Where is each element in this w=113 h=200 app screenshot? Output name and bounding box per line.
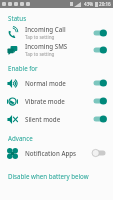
staticText: Incoming SMS (25, 42, 68, 50)
staticText: 20:16 (99, 1, 111, 7)
staticText: Normal mode (25, 79, 66, 87)
button[interactable]: Toggle on (92, 114, 107, 124)
button[interactable]: Incoming Call (0, 24, 113, 41)
button[interactable]: Incoming SMS (0, 41, 113, 58)
button[interactable]: Toggle on (92, 78, 107, 88)
staticText: Advance (8, 134, 33, 142)
staticText: Enable for (8, 64, 38, 72)
staticText: Incoming Call (25, 25, 66, 33)
button[interactable]: Disable when battery below (0, 169, 113, 183)
staticText: Vibrate mode (25, 97, 65, 105)
staticText: Status (8, 14, 27, 22)
button[interactable]: Toggle on (92, 45, 107, 55)
staticText: Tap to setting (25, 51, 55, 57)
staticText: Disable when battery below (8, 172, 89, 180)
button[interactable]: Toggle off (92, 148, 107, 158)
staticText: Notification Apps (25, 149, 77, 157)
button[interactable]: Notification Apps (0, 144, 113, 162)
button[interactable]: Vibrate mode (0, 92, 113, 110)
button[interactable]: Silent mode (0, 110, 113, 128)
button[interactable]: Toggle on (92, 96, 107, 106)
staticText: Tap to setting (25, 34, 55, 40)
button[interactable]: Normal mode (0, 74, 113, 92)
button[interactable]: Toggle on (92, 28, 107, 38)
staticText: 43% (84, 1, 94, 7)
staticText: Silent mode (25, 115, 61, 123)
